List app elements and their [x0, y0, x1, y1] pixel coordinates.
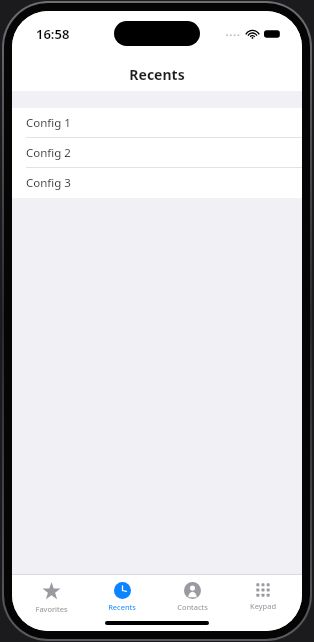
- staticText: Config 2: [26, 145, 71, 161]
- other: Keypad: [255, 582, 271, 598]
- staticText: Contacts: [177, 602, 208, 612]
- button[interactable]: Favorites: [19, 580, 83, 614]
- button[interactable]: Config 1: [12, 108, 302, 138]
- other: Favorites: [42, 582, 61, 601]
- staticText: Recents: [129, 65, 185, 84]
- staticText: Recents: [108, 602, 136, 612]
- button[interactable]: Config 2: [12, 138, 302, 168]
- other: Contacts: [184, 582, 201, 599]
- other: Recents: [114, 582, 131, 599]
- staticText: 16:58: [36, 25, 70, 43]
- button[interactable]: Contacts: [160, 580, 224, 612]
- button[interactable]: Keypad: [231, 580, 295, 611]
- staticText: Config 3: [26, 175, 71, 191]
- button[interactable]: Recents: [90, 580, 154, 612]
- button[interactable]: Config 3: [12, 168, 302, 198]
- staticText: Keypad: [250, 601, 276, 611]
- staticText: Favorites: [35, 604, 68, 614]
- staticText: Config 1: [26, 115, 71, 131]
